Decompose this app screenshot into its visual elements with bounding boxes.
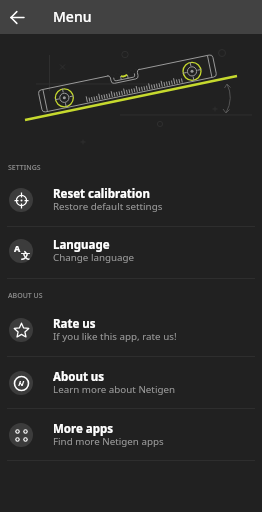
button[interactable]: More apps xyxy=(0,416,262,454)
staticText: If you like this app, rate us! xyxy=(53,330,177,343)
staticText: Find more Netigen apps xyxy=(53,435,164,448)
staticText: Reset calibration xyxy=(53,186,150,202)
button[interactable]: Rate us xyxy=(0,311,262,349)
staticText: 文 xyxy=(21,250,30,261)
staticText: SETTINGS xyxy=(8,163,41,173)
staticText: Language xyxy=(53,237,110,253)
staticText: ABOUT US xyxy=(8,291,43,301)
staticText: Menu xyxy=(53,7,92,26)
staticText: Change language xyxy=(53,251,135,264)
staticText: Restore default settings xyxy=(53,200,163,213)
staticText: About us xyxy=(53,369,105,385)
staticText: Learn more about Netigen xyxy=(53,383,176,396)
button[interactable]: Back xyxy=(0,0,34,34)
staticText: A xyxy=(14,242,21,254)
button[interactable]: A xyxy=(0,232,262,270)
button[interactable]: Reset calibration xyxy=(0,181,262,219)
staticText: More apps xyxy=(53,421,113,437)
button[interactable]: About us xyxy=(0,364,262,402)
staticText: Rate us xyxy=(53,316,96,332)
